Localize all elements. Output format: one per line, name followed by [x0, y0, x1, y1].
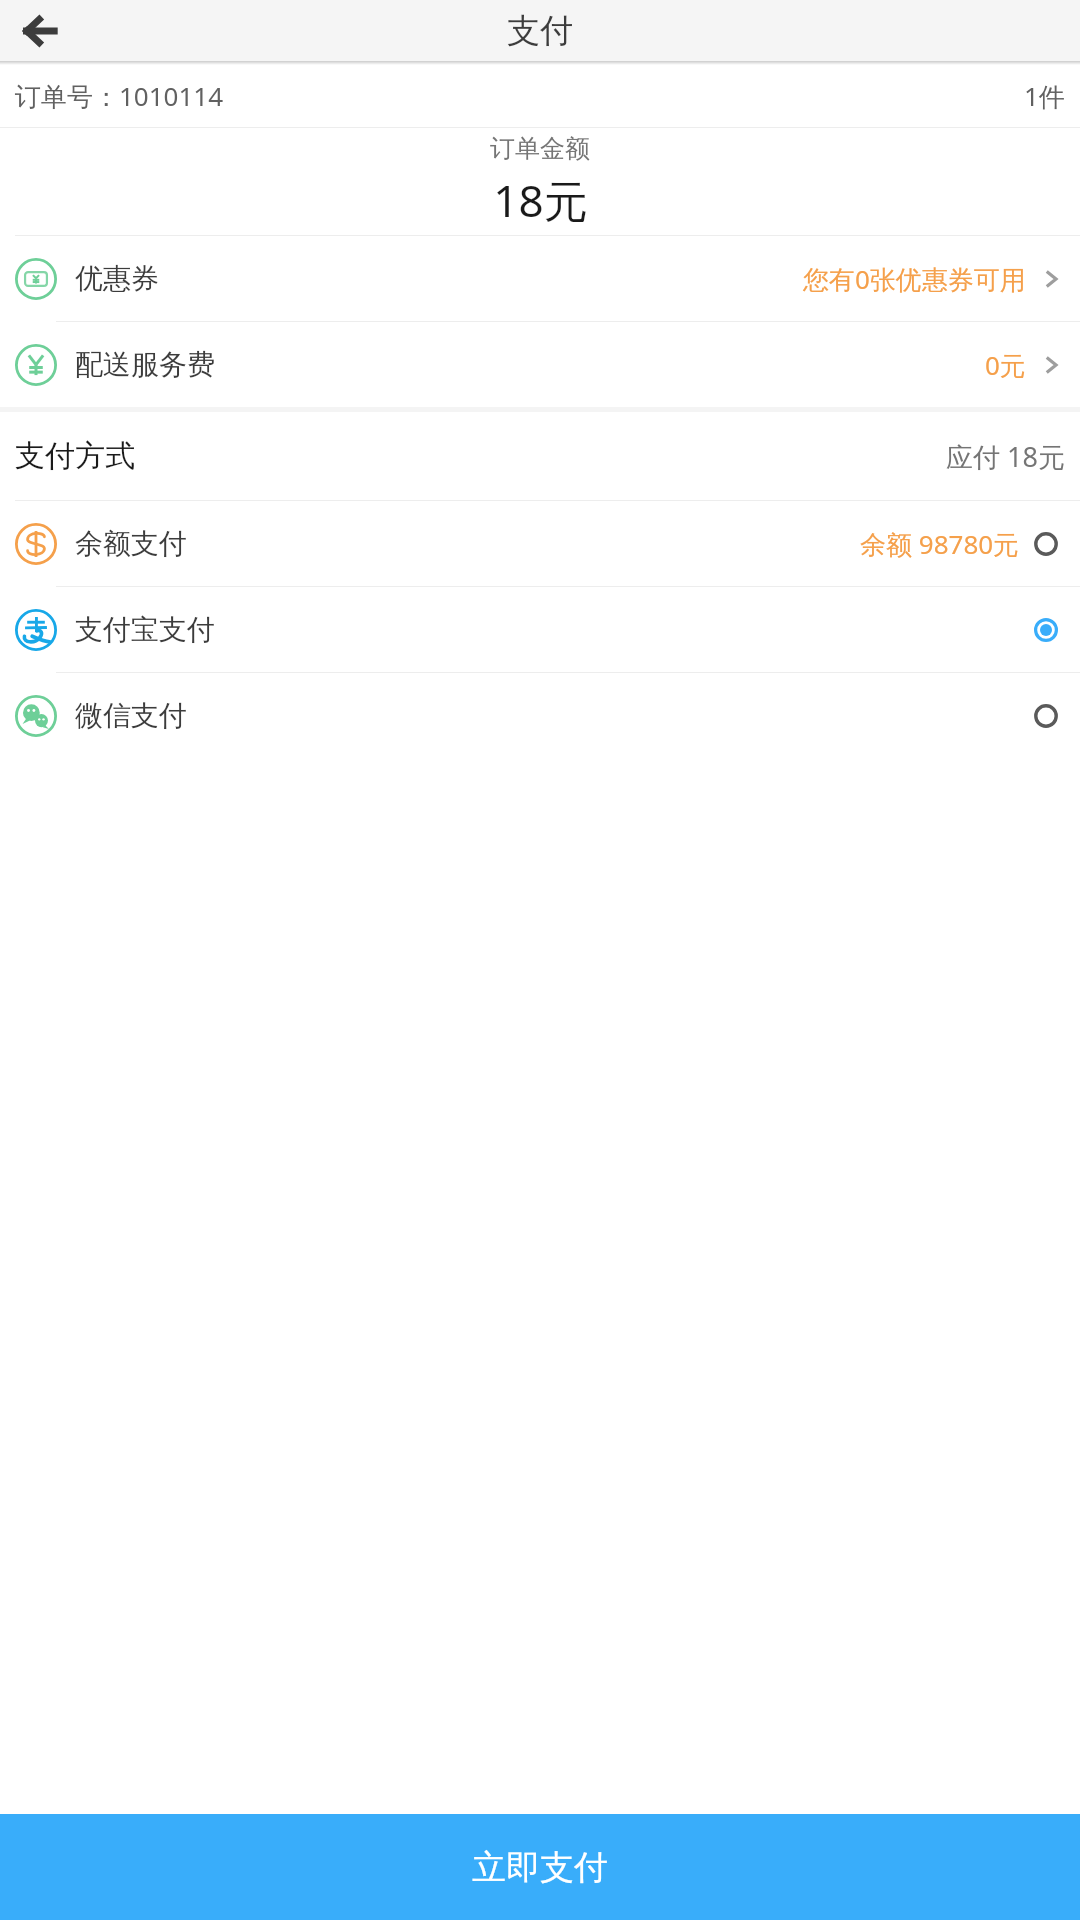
button[interactable]: 余额支付 — [0, 501, 1080, 586]
staticText: 微信支付 — [75, 698, 187, 733]
staticText: 订单金额 — [490, 133, 590, 164]
button[interactable]: 优惠券 — [0, 236, 1080, 321]
button[interactable]: 立即支付 — [0, 1814, 1080, 1920]
staticText: 订单号：1010114 — [15, 78, 224, 114]
staticText: 18元 — [493, 170, 588, 230]
button[interactable]: 订单号：1010114 — [0, 65, 1080, 127]
staticText: 立即支付 — [472, 1846, 608, 1889]
staticText: 支付方式 — [15, 437, 135, 475]
staticText: 应付 18元 — [946, 438, 1065, 475]
button[interactable]: 支付宝支付 — [0, 587, 1080, 672]
staticText: 余额支付 — [75, 526, 187, 561]
staticText: 您有0张优惠券可用 — [803, 261, 1026, 297]
staticText: 优惠券 — [75, 261, 159, 296]
staticText: 支付宝支付 — [75, 612, 215, 647]
button[interactable]: 微信支付 — [0, 673, 1080, 758]
staticText: 0元 — [985, 347, 1026, 383]
button[interactable]: 配送服务费 — [0, 322, 1080, 407]
button[interactable]: Back — [14, 5, 66, 57]
staticText: 1件 — [1024, 78, 1065, 114]
staticText: 余额 98780元 — [860, 526, 1020, 562]
staticText: 支付 — [507, 10, 573, 52]
staticText: 配送服务费 — [75, 347, 215, 382]
